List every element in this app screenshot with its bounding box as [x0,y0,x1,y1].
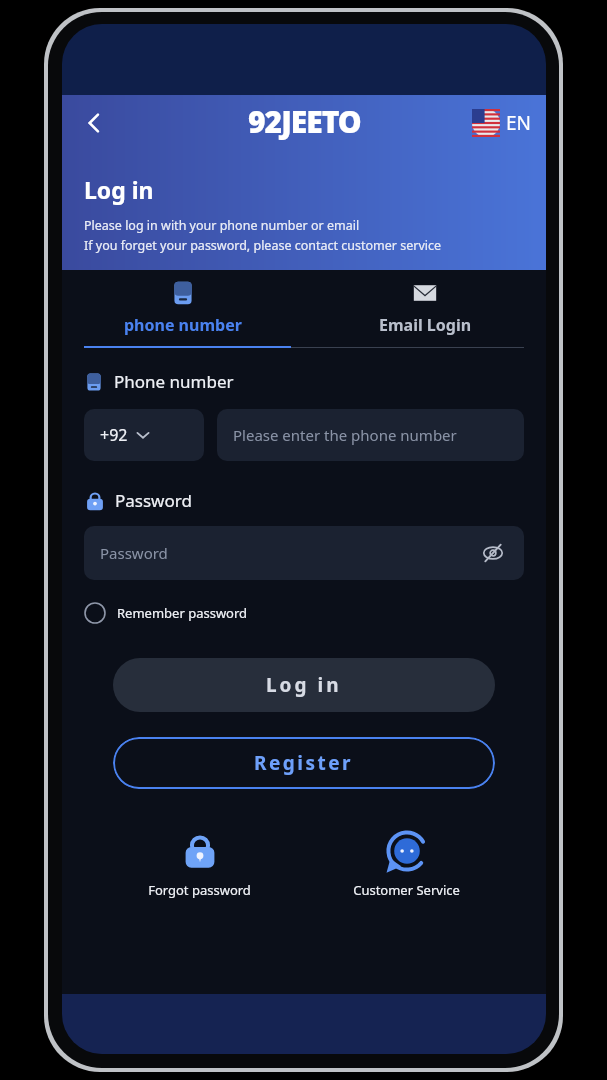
staticText: Log in [84,174,154,205]
staticText: Password [115,489,192,512]
button[interactable]: Register [113,737,495,789]
staticText: Log in [266,672,342,698]
staticText: Phone number [114,370,234,393]
staticText: 92JEETO [248,101,361,142]
button[interactable]: phone number [62,270,304,346]
button[interactable]: Email Login [304,270,546,346]
staticText: Please log in with your phone number or … [84,217,360,234]
staticText: Customer Service [353,881,460,899]
button[interactable]: Back [72,101,116,145]
button[interactable]: +92 [84,409,204,461]
button[interactable]: Password [84,526,524,580]
staticText: Password [100,543,168,563]
staticText: Email Login [379,314,472,336]
staticText: EN [506,110,532,136]
staticText: phone number [124,314,242,336]
staticText: Remember password [117,604,248,622]
staticText: +92 [100,424,128,446]
button[interactable]: Show password [478,538,508,568]
button[interactable]: EN [468,105,536,141]
button[interactable]: Customer Service [337,827,476,903]
staticText: Forgot password [148,881,251,899]
button[interactable]: Remember password [84,598,248,628]
button[interactable]: Forgot password [132,827,267,903]
button[interactable]: Please enter the phone number [217,409,524,461]
button[interactable]: Log in [113,658,495,712]
staticText: Please enter the phone number [233,425,457,445]
staticText: If you forget your password, please cont… [84,237,442,254]
staticText: Register [254,750,354,776]
